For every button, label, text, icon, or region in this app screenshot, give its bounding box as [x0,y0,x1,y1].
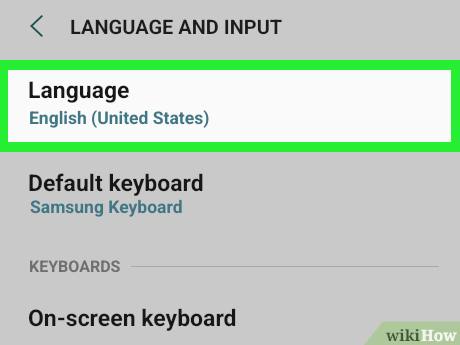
staticText: KEYBOARDS [29,257,121,276]
staticText: How [421,324,457,345]
staticText: wiki [386,324,421,345]
staticText: English (United States) [29,108,210,129]
staticText: Samsung Keyboard [30,197,183,218]
button[interactable]: Language [8,70,451,142]
button[interactable]: On-screen keyboard [0,296,460,345]
staticText: Language [28,77,130,104]
button[interactable]: Default keyboard [0,160,460,226]
staticText: Default keyboard [28,170,204,197]
staticText: LANGUAGE AND INPUT [70,15,283,38]
staticText: On-screen keyboard [28,305,237,332]
button[interactable]: Back [15,7,53,45]
